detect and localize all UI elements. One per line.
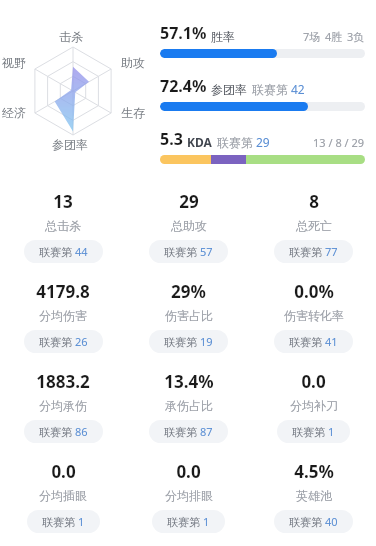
- staticText: 0.0: [51, 460, 76, 483]
- button[interactable]: 5.3: [160, 128, 365, 164]
- staticText: 生存: [121, 105, 145, 120]
- staticText: 29%: [171, 280, 206, 303]
- button[interactable]: 13.4%: [126, 356, 251, 446]
- staticText: 联赛第: [289, 515, 322, 529]
- staticText: 1: [328, 424, 335, 439]
- button[interactable]: 72.4%: [160, 75, 365, 111]
- staticText: 13.4%: [164, 370, 214, 393]
- staticText: 总击杀: [45, 218, 81, 233]
- staticText: 联赛第: [217, 135, 253, 150]
- staticText: 4胜: [325, 29, 343, 44]
- button[interactable]: 4179.8: [0, 266, 126, 356]
- staticText: 72.4%: [160, 75, 207, 97]
- button[interactable]: 29%: [126, 266, 251, 356]
- staticText: 分均承伤: [39, 398, 87, 413]
- staticText: 3负: [347, 29, 365, 44]
- staticText: 1: [78, 514, 85, 529]
- button[interactable]: 8: [251, 176, 376, 266]
- staticText: 分均补刀: [290, 398, 338, 413]
- staticText: 40: [325, 514, 338, 529]
- staticText: 13: [53, 190, 73, 213]
- staticText: 联赛第: [39, 335, 72, 349]
- staticText: 29: [179, 190, 199, 213]
- staticText: 胜率: [211, 29, 235, 44]
- staticText: 1: [203, 514, 210, 529]
- staticText: 联赛第: [252, 82, 288, 97]
- staticText: 57: [200, 244, 213, 259]
- staticText: 0.0%: [294, 280, 334, 303]
- staticText: 7场: [303, 29, 321, 44]
- staticText: 联赛第: [42, 515, 75, 529]
- staticText: KDA: [187, 134, 212, 150]
- button[interactable]: 4.5%: [251, 446, 376, 536]
- button[interactable]: 0.0: [126, 446, 251, 536]
- button[interactable]: 0.0: [251, 356, 376, 446]
- button[interactable]: 0.0: [0, 446, 126, 536]
- button[interactable]: 1883.2: [0, 356, 126, 446]
- staticText: 57.1%: [160, 22, 207, 44]
- staticText: 4179.8: [36, 280, 90, 303]
- staticText: 4.5%: [294, 460, 334, 483]
- staticText: 联赛第: [167, 515, 200, 529]
- staticText: 8: [309, 190, 319, 213]
- staticText: 分均排眼: [165, 488, 213, 503]
- staticText: 87: [200, 424, 213, 439]
- staticText: 0.0: [176, 460, 201, 483]
- staticText: 分均插眼: [39, 488, 87, 503]
- button[interactable]: 57.1%: [160, 22, 365, 58]
- staticText: 经济: [2, 105, 26, 120]
- staticText: 伤害转化率: [284, 308, 344, 323]
- button[interactable]: 0.0%: [251, 266, 376, 356]
- staticText: 联赛第: [289, 335, 322, 349]
- staticText: 伤害占比: [165, 308, 213, 323]
- staticText: 86: [75, 424, 88, 439]
- staticText: 英雄池: [296, 488, 332, 503]
- button[interactable]: 13: [0, 176, 126, 266]
- staticText: 77: [325, 244, 338, 259]
- staticText: 26: [75, 334, 88, 349]
- staticText: 参团率: [52, 137, 88, 152]
- staticText: 承伤占比: [165, 398, 213, 413]
- staticText: 总死亡: [296, 218, 332, 233]
- staticText: 联赛第: [164, 245, 197, 259]
- staticText: 联赛第: [39, 245, 72, 259]
- staticText: 5.3: [160, 128, 183, 150]
- staticText: 联赛第: [39, 425, 72, 439]
- staticText: 总助攻: [171, 218, 207, 233]
- staticText: 视野: [2, 55, 26, 70]
- staticText: 分均伤害: [39, 308, 87, 323]
- staticText: 助攻: [121, 55, 145, 70]
- staticText: 联赛第: [292, 425, 325, 439]
- staticText: 42: [291, 81, 305, 97]
- staticText: 13 / 8 / 29: [313, 135, 365, 150]
- staticText: 联赛第: [164, 335, 197, 349]
- staticText: 41: [325, 334, 338, 349]
- staticText: 29: [256, 134, 270, 150]
- staticText: 19: [200, 334, 213, 349]
- staticText: 联赛第: [289, 245, 322, 259]
- staticText: 44: [75, 244, 88, 259]
- staticText: 击杀: [59, 29, 83, 44]
- staticText: 联赛第: [164, 425, 197, 439]
- staticText: 1883.2: [36, 370, 90, 393]
- staticText: 0.0: [301, 370, 326, 393]
- button[interactable]: 29: [126, 176, 251, 266]
- staticText: 参团率: [211, 82, 247, 97]
